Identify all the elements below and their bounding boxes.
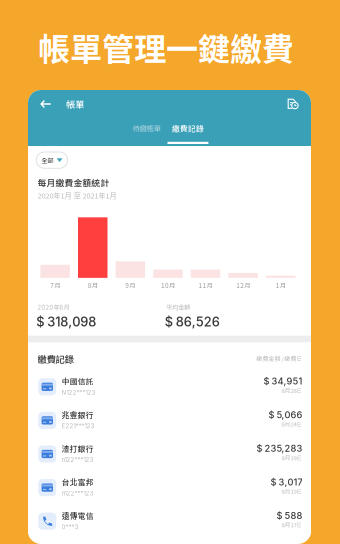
staticText: 9月 (125, 281, 135, 290)
staticText: $ 318,098 (36, 314, 96, 329)
staticText: $ 3,017 (270, 476, 302, 488)
staticText: 8月19日 (281, 487, 302, 495)
button[interactable]: 渣打銀行 (28, 438, 311, 471)
staticText: 遠傳電信 (62, 510, 94, 521)
staticText: 繳費記錄 (172, 123, 204, 134)
button[interactable]: 待繳帳單 (124, 123, 168, 141)
button[interactable]: 遠傳電信 (28, 505, 311, 538)
staticText: 繳費金額 / 繳費日 (256, 354, 302, 363)
staticText: 10月 (161, 281, 175, 290)
staticText: 8月17日 (281, 520, 302, 529)
staticText: 7月 (50, 281, 60, 290)
staticText: $ 235,283 (256, 443, 302, 454)
staticText: 待繳帳單 (132, 123, 160, 133)
button[interactable]: 返回 (34, 92, 58, 116)
staticText: 繳費記錄 (38, 352, 74, 365)
staticText: 2020年1月 至 2021年1月 (38, 190, 117, 201)
staticText: 兆豐銀行 (62, 409, 94, 420)
staticText: $ 5,066 (268, 409, 302, 420)
staticText: $ 86,526 (165, 314, 220, 329)
staticText: 平均金額 (166, 302, 190, 312)
staticText: $ 34,951 (263, 376, 302, 387)
staticText: 2020年8月 (38, 302, 70, 312)
staticText: N122***123 (61, 389, 95, 396)
staticText: 11月 (199, 281, 213, 290)
button[interactable]: 全部 (36, 152, 68, 168)
staticText: n122***123 (61, 490, 93, 497)
staticText: n122***123 (61, 456, 93, 463)
staticText: 渣打銀行 (62, 443, 94, 454)
button[interactable]: 台北富邦 (28, 471, 311, 505)
staticText: 0***3 (61, 523, 78, 531)
staticText: 帳單 (66, 97, 84, 110)
staticText: E221***123 (61, 422, 94, 430)
staticText: 1月 (276, 281, 286, 290)
staticText: 帳單管理一鍵繳費 (38, 24, 294, 70)
button[interactable]: 繳費記錄 (166, 123, 210, 144)
button[interactable]: 帳單歷史 (280, 92, 304, 116)
staticText: 每月繳費金額統計 (38, 176, 110, 189)
staticText: 8月28日 (281, 386, 302, 395)
staticText: 台北富邦 (62, 476, 94, 487)
staticText: $ 588 (276, 510, 302, 521)
button[interactable]: 中國信託 (28, 370, 311, 404)
staticText: 8月24日 (281, 420, 302, 428)
button[interactable]: 兆豐銀行 (28, 404, 311, 438)
staticText: 8月 (88, 281, 98, 290)
staticText: 全部 (41, 155, 53, 165)
staticText: 中國信託 (62, 375, 94, 387)
staticText: 8月19日 (281, 453, 302, 462)
staticText: 12月 (236, 281, 250, 290)
